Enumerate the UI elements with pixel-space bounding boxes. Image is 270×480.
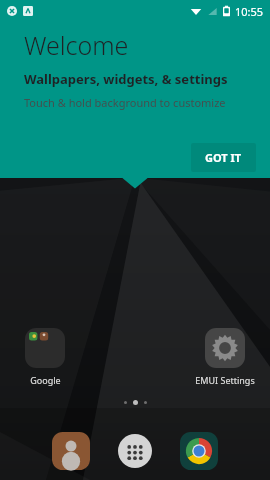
button[interactable]: GOT IT	[191, 143, 256, 172]
button[interactable]: Chrome	[178, 430, 220, 472]
staticText: 10:55	[235, 4, 264, 19]
staticText: EMUI Settings	[195, 374, 255, 386]
staticText: GOT IT	[205, 150, 242, 165]
staticText: Welcome	[24, 28, 129, 62]
button[interactable]: Google	[14, 328, 76, 386]
staticText: Wallpapers, widgets, & settings	[24, 70, 228, 88]
button[interactable]: All apps	[114, 430, 156, 472]
staticText: Touch & hold background to customize	[24, 95, 226, 110]
button[interactable]: Contacts	[50, 430, 92, 472]
button[interactable]: EMUI Settings	[194, 328, 256, 386]
staticText: Google	[30, 374, 61, 386]
